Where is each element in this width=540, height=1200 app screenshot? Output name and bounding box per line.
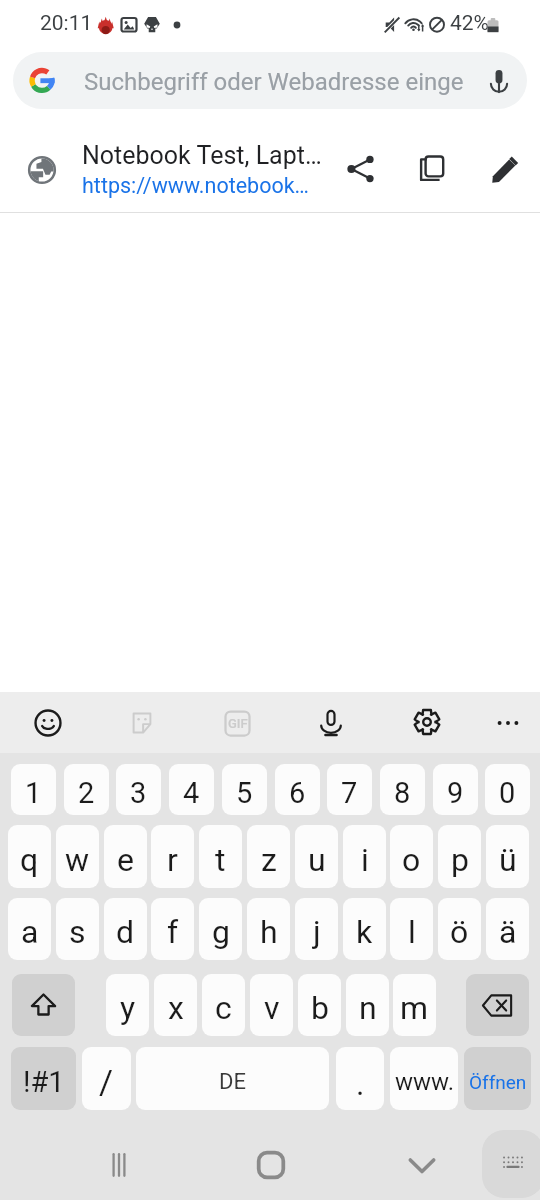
button[interactable]: Hide keyboard xyxy=(377,1130,467,1200)
button[interactable]: !#1 xyxy=(11,1047,76,1110)
staticText: l xyxy=(408,913,416,951)
staticText: ü xyxy=(499,841,517,879)
staticText: d xyxy=(116,913,135,951)
button[interactable]: Recents xyxy=(74,1130,164,1200)
button[interactable]: x xyxy=(154,974,197,1036)
button[interactable]: k xyxy=(343,898,386,960)
button[interactable]: y xyxy=(106,974,149,1036)
staticText: 2 xyxy=(78,776,95,810)
button[interactable]: ü xyxy=(486,825,529,888)
button[interactable]: j xyxy=(295,898,338,960)
staticText: r xyxy=(167,841,178,879)
staticText: a xyxy=(21,913,39,951)
button[interactable]: 6 xyxy=(275,764,320,815)
button[interactable]: . xyxy=(336,1047,384,1110)
staticText: c xyxy=(215,989,232,1027)
button[interactable]: 8 xyxy=(380,764,425,815)
staticText: 42% xyxy=(450,11,489,36)
button[interactable]: Stickers xyxy=(115,696,169,750)
button[interactable]: 7 xyxy=(327,764,372,815)
button[interactable]: Backspace xyxy=(466,974,529,1036)
button[interactable]: www. xyxy=(390,1047,458,1110)
button[interactable]: r xyxy=(151,825,194,888)
button[interactable]: z xyxy=(247,825,290,888)
staticText: m xyxy=(400,989,429,1027)
button[interactable]: g xyxy=(199,898,242,960)
button[interactable]: Edit xyxy=(473,125,538,212)
button[interactable]: h xyxy=(247,898,290,960)
button[interactable]: ö xyxy=(438,898,481,960)
button[interactable]: b xyxy=(298,974,341,1036)
button[interactable]: s xyxy=(56,898,99,960)
button[interactable]: Shift xyxy=(12,974,75,1036)
staticText: GIF xyxy=(228,716,248,731)
button[interactable]: DE xyxy=(136,1047,329,1110)
staticText: u xyxy=(308,841,326,879)
button[interactable]: d xyxy=(104,898,147,960)
button[interactable]: Keyboard settings xyxy=(400,695,454,749)
button[interactable]: c xyxy=(202,974,245,1036)
staticText: 7 xyxy=(341,776,358,810)
button[interactable]: Notebook Test, Lapt… xyxy=(0,125,540,212)
button[interactable]: 2 xyxy=(64,764,109,815)
button[interactable]: Emoji xyxy=(21,696,75,750)
button[interactable]: f xyxy=(151,898,194,960)
button[interactable]: 1 xyxy=(11,764,56,815)
staticText: DE xyxy=(219,1069,246,1095)
button[interactable]: Öffnen xyxy=(464,1047,531,1110)
button[interactable]: Copy xyxy=(399,125,464,212)
staticText: ä xyxy=(499,913,517,951)
staticText: x xyxy=(168,989,184,1027)
button[interactable]: More options xyxy=(481,696,535,750)
button[interactable]: 3 xyxy=(116,764,161,815)
staticText: s xyxy=(69,913,86,951)
staticText: ö xyxy=(450,913,469,951)
button[interactable]: m xyxy=(393,974,436,1036)
staticText: 0 xyxy=(499,776,516,810)
staticText: Öffnen xyxy=(469,1071,527,1093)
staticText: z xyxy=(261,841,277,879)
staticText: t xyxy=(215,841,226,879)
button[interactable]: GIF xyxy=(210,696,264,750)
button[interactable]: n xyxy=(346,974,389,1036)
button[interactable]: 9 xyxy=(433,764,478,815)
staticText: h xyxy=(260,913,278,951)
button[interactable]: Voice search xyxy=(470,52,527,109)
staticText: 6 xyxy=(289,776,306,810)
button[interactable]: p xyxy=(438,825,481,888)
button[interactable]: a xyxy=(8,898,51,960)
staticText: e xyxy=(117,841,134,879)
staticText: www. xyxy=(395,1068,454,1096)
button[interactable]: i xyxy=(343,825,386,888)
staticText: g xyxy=(212,913,230,951)
staticText: j xyxy=(313,913,321,951)
staticText: f xyxy=(167,913,179,951)
button[interactable]: Change keyboard xyxy=(482,1130,540,1198)
button[interactable]: e xyxy=(104,825,147,888)
button[interactable]: ä xyxy=(486,898,529,960)
staticText: 1 xyxy=(25,776,42,810)
staticText: . xyxy=(356,1065,365,1103)
button[interactable]: v xyxy=(250,974,293,1036)
staticText: n xyxy=(359,989,377,1027)
button[interactable]: Voice input xyxy=(304,696,358,750)
staticText: o xyxy=(402,841,421,879)
button[interactable]: o xyxy=(390,825,433,888)
button[interactable]: 0 xyxy=(485,764,530,815)
button[interactable]: Share xyxy=(328,125,393,212)
button[interactable]: u xyxy=(295,825,338,888)
button[interactable]: l xyxy=(390,898,433,960)
button[interactable]: Home xyxy=(226,1130,316,1200)
staticText: !#1 xyxy=(23,1065,65,1099)
button[interactable]: 4 xyxy=(169,764,214,815)
staticText: w xyxy=(65,841,90,879)
button[interactable]: t xyxy=(199,825,242,888)
staticText: 4 xyxy=(183,776,200,810)
staticText: 5 xyxy=(236,776,253,810)
button[interactable]: / xyxy=(82,1047,131,1110)
staticText: https://www.notebook… xyxy=(82,173,309,198)
button[interactable]: 5 xyxy=(222,764,267,815)
button[interactable]: q xyxy=(8,825,51,888)
button[interactable]: Suchbegriff oder Webadresse einge xyxy=(13,52,527,109)
button[interactable]: w xyxy=(56,825,99,888)
